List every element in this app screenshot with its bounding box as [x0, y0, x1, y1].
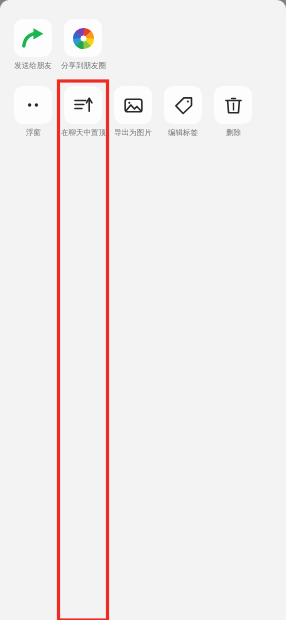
button[interactable]: 删除 [208, 81, 258, 140]
button[interactable]: 在聊天中置顶 [58, 81, 108, 140]
staticText: 编辑标签 [168, 128, 198, 137]
staticText: 你好 [19, 63, 45, 79]
staticText: 分享到朋友圈 [61, 61, 106, 70]
button[interactable]: 分享到朋友圈 [58, 14, 108, 73]
button[interactable]: 导出为图片 [108, 81, 158, 140]
staticText: 导出为图片 [114, 128, 152, 137]
button[interactable]: 发送给朋友 [8, 14, 58, 73]
staticText: 在聊天中置顶 [61, 128, 106, 137]
staticText: 删除 [226, 128, 241, 137]
button[interactable]: Back [0, 28, 38, 57]
staticText: 浮窗 [26, 128, 41, 137]
button[interactable]: 浮窗 [8, 81, 58, 140]
staticText: 发送给朋友 [14, 61, 52, 70]
staticText: 10:35 [25, 6, 56, 22]
button[interactable]: 编辑标签 [158, 81, 208, 140]
